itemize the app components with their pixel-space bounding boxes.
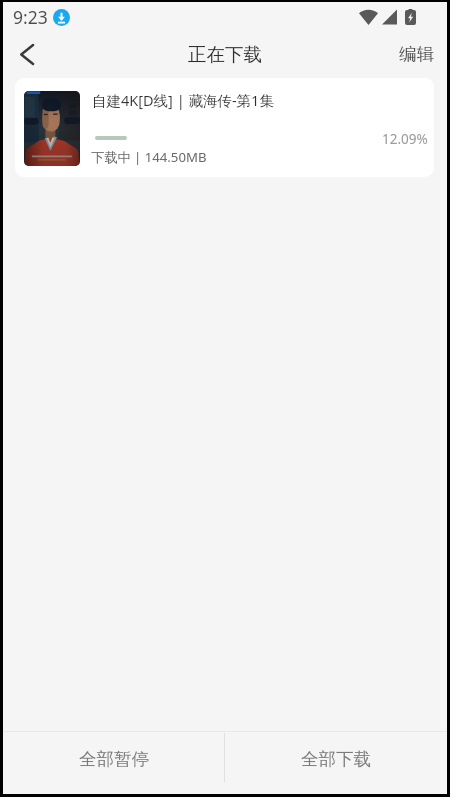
button[interactable]: 全部下载 (225, 732, 447, 794)
staticText: 9:23 (13, 5, 48, 29)
staticText: 全部暂停 (79, 748, 149, 770)
staticText: 正在下载 (188, 43, 262, 66)
button[interactable]: Back (3, 32, 51, 80)
staticText: 12.09% (382, 130, 428, 148)
other: Downloading (53, 9, 70, 26)
staticText: 全部下载 (301, 748, 371, 770)
staticText: 编辑 (399, 43, 434, 65)
staticText: 自建4K[D线] | 藏海传-第1集 (92, 90, 274, 110)
button[interactable]: 编辑 (383, 32, 447, 80)
button[interactable]: 全部暂停 (3, 732, 224, 794)
staticText: 下载中 | 144.50MB (91, 148, 207, 166)
button[interactable]: 自建4K[D线] | 藏海传-第1集 (15, 78, 434, 177)
